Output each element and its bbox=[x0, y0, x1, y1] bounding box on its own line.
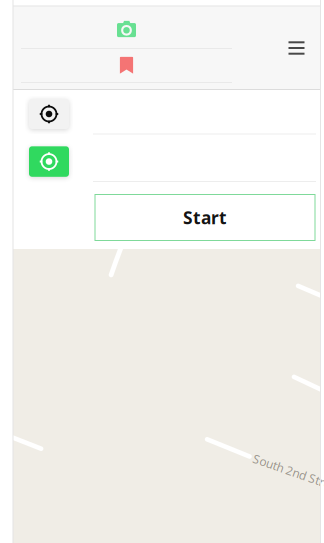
button[interactable]: Start bbox=[95, 194, 315, 240]
staticText: South 2nd Street bbox=[250, 469, 324, 485]
button[interactable]: Menu bbox=[274, 26, 318, 70]
button[interactable]: Pick location on map bbox=[29, 99, 69, 129]
staticText: Start bbox=[183, 206, 227, 229]
button[interactable]: Use current location bbox=[29, 146, 69, 177]
button[interactable]: Saved places bbox=[76, 48, 176, 82]
button[interactable]: Camera bbox=[76, 10, 176, 48]
